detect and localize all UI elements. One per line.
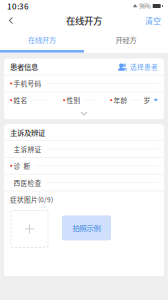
staticText: 年龄 [114,95,128,105]
staticText: 开经方 [115,34,136,45]
staticText: 手机号码 [14,79,42,88]
staticText: 主诉及辨证 [10,127,45,137]
staticText: 10:36 [7,0,29,12]
staticText: 性别 [67,95,81,105]
button[interactable]: 在线开方 [0,29,84,50]
staticText: 岁 [144,95,151,105]
staticText: 在线开方 [28,34,56,45]
staticText: 选择患者 [130,62,158,71]
button[interactable]: 清空 [138,12,168,29]
button[interactable]: 展开 [72,109,96,119]
staticText: 在线开方 [66,14,102,27]
staticText: 清空 [145,15,161,26]
button[interactable]: 开经方 [84,29,168,50]
button[interactable]: 拍照示例 [62,215,111,240]
staticText: 诊 断 [14,161,31,171]
button[interactable]: 选择患者 [118,59,158,75]
staticText: 96% [139,2,151,10]
button[interactable]: 上传图片 [11,210,48,247]
button[interactable]: 返回 [0,12,22,29]
staticText: 姓名 [14,95,28,105]
staticText: 拍照示例 [72,223,100,233]
staticText: 西医检查 [14,178,42,187]
staticText: 主诉辨证 [14,144,42,154]
staticText: 患者信息 [10,61,38,72]
staticText: 症状图片(0/9) [10,195,53,204]
